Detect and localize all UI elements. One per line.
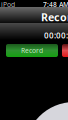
staticText: 00:00:25: [44, 30, 68, 41]
staticText: Record: [21, 46, 43, 55]
staticText: 7:48 AM: [43, 0, 68, 9]
button[interactable]: Stop: [62, 44, 68, 57]
button[interactable]: Record: [6, 44, 58, 57]
staticText: Record: [41, 10, 68, 24]
staticText: iPod: [1, 0, 15, 9]
